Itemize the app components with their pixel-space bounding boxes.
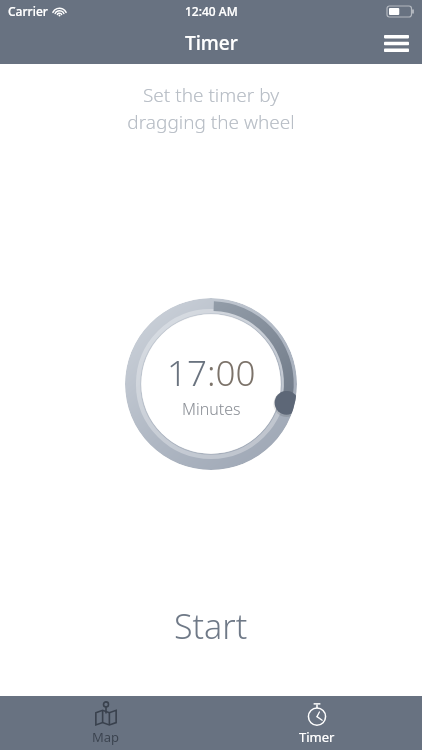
button[interactable]: Map: [0, 696, 211, 750]
staticText: Timer: [185, 30, 238, 56]
button[interactable]: Timer: [211, 696, 422, 750]
staticText: 17:00: [167, 349, 256, 397]
staticText: Minutes: [182, 398, 241, 420]
staticText: Timer: [299, 728, 335, 746]
staticText: Set the timer by dragging the wheel: [127, 82, 295, 135]
button[interactable]: Start: [148, 597, 274, 655]
button[interactable]: Timer wheel, 17 minutes: [125, 298, 297, 470]
staticText: Carrier: [8, 3, 48, 19]
button[interactable]: Menu: [370, 22, 422, 64]
staticText: 12:40 AM: [185, 3, 238, 19]
staticText: Map: [92, 728, 120, 746]
staticText: Start: [174, 603, 248, 649]
